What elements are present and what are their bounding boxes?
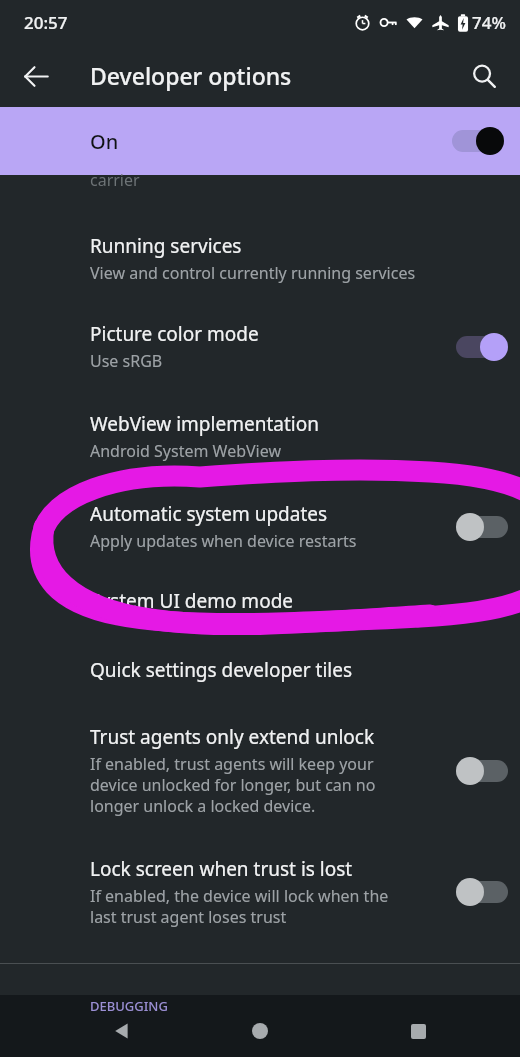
button[interactable]: Running services: [0, 233, 520, 284]
button[interactable]: Recent apps: [394, 1007, 442, 1055]
staticText: DEBUGGING: [90, 997, 168, 1015]
staticText: Android System WebView: [90, 440, 282, 462]
button[interactable]: Quick settings developer tiles: [0, 657, 520, 683]
staticText: WebView implementation: [90, 411, 319, 437]
button[interactable]: Automatic system updates: [0, 501, 520, 552]
staticText: Apply updates when device restarts: [90, 530, 357, 552]
staticText: carrier: [90, 169, 140, 191]
button[interactable]: Back: [98, 1002, 146, 1050]
staticText: 74%: [472, 11, 506, 34]
staticText: View and control currently running servi…: [90, 262, 416, 284]
staticText: System UI demo mode: [90, 588, 294, 614]
staticText: 20:57: [24, 11, 68, 34]
button[interactable]: Picture color mode: [0, 321, 520, 372]
staticText: Use sRGB: [90, 350, 163, 372]
button[interactable]: System UI demo mode: [0, 588, 520, 614]
staticText: Running services: [90, 233, 242, 259]
staticText: Quick settings developer tiles: [90, 657, 353, 683]
staticText: Trust agents only extend unlock: [90, 724, 375, 750]
staticText: Developer options: [90, 60, 292, 91]
button[interactable]: Home: [236, 1007, 284, 1055]
button[interactable]: Search: [458, 50, 510, 102]
staticText: If enabled, the device will lock when th…: [90, 885, 389, 928]
staticText: On: [90, 128, 119, 155]
button[interactable]: Trust agents only extend unlock: [0, 724, 520, 817]
button[interactable]: Lock screen when trust is lost: [0, 856, 520, 928]
staticText: Lock screen when trust is lost: [90, 856, 353, 882]
button[interactable]: Back: [10, 50, 62, 102]
button[interactable]: WebView implementation: [0, 411, 520, 462]
staticText: If enabled, trust agents will keep your …: [90, 753, 376, 817]
button[interactable]: On: [0, 107, 520, 175]
staticText: Picture color mode: [90, 321, 259, 347]
staticText: Automatic system updates: [90, 501, 328, 527]
